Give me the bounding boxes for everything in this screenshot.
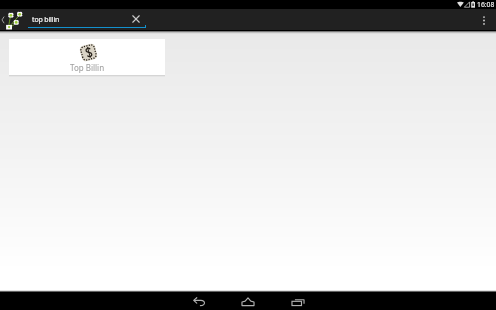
button[interactable]: top billin (28, 12, 128, 28)
staticText: 16:08 (477, 0, 495, 9)
button[interactable]: Clear query (129, 12, 143, 26)
button[interactable]: Back (187, 292, 211, 310)
button[interactable]: Recent apps (286, 292, 310, 310)
staticText: top billin (32, 15, 60, 25)
staticText: Top Billin (70, 62, 105, 73)
button[interactable]: Navigate up (0, 9, 6, 30)
button[interactable]: More options (478, 9, 490, 30)
button[interactable]: Home (236, 292, 260, 310)
button[interactable]: Top Billin (9, 39, 165, 75)
